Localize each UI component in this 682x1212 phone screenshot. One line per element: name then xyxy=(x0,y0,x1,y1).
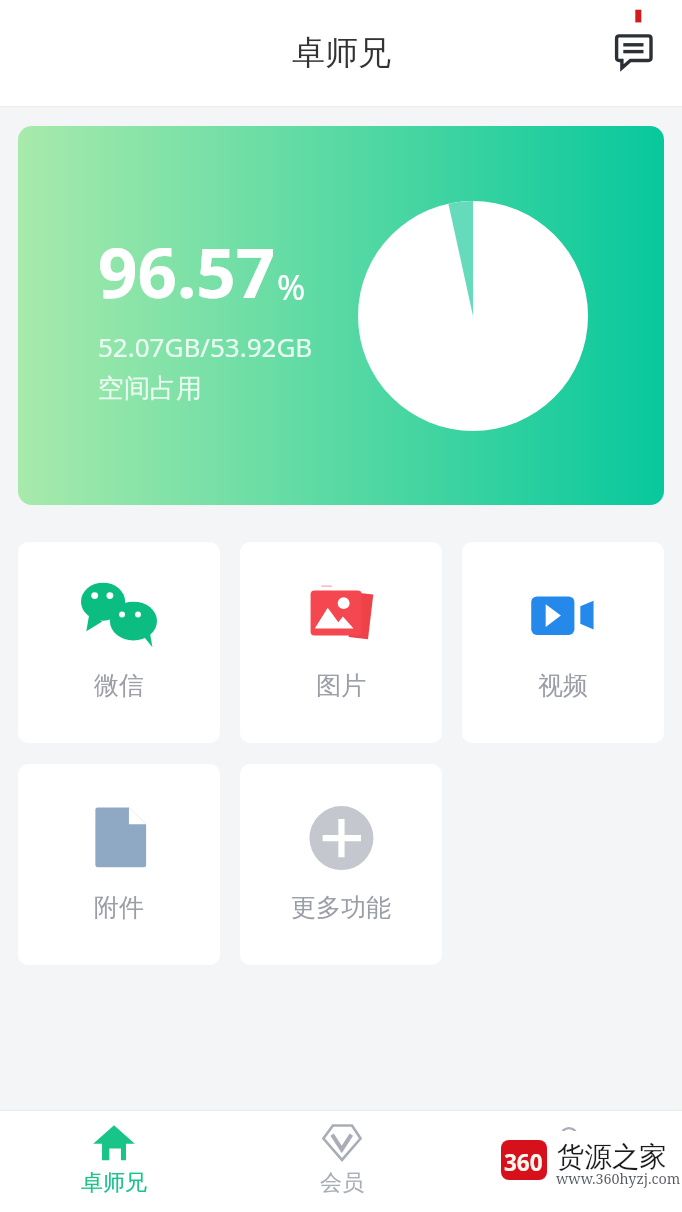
staticText: 空间占用 xyxy=(98,372,202,405)
staticText: 卓师兄 xyxy=(292,32,391,74)
button[interactable]: 96.57 xyxy=(18,126,664,505)
staticText: 图片 xyxy=(316,670,366,701)
button[interactable]: Messages xyxy=(606,0,662,80)
button[interactable]: 更多功能 xyxy=(240,764,442,965)
button[interactable]: 卓师兄 xyxy=(0,1110,228,1212)
staticText: 更多功能 xyxy=(291,892,391,923)
staticText: 96.57 xyxy=(98,224,276,318)
button[interactable]: 图片 xyxy=(240,542,442,743)
staticText: 货源之家 xyxy=(557,1140,667,1175)
staticText: 我的 xyxy=(547,1169,591,1197)
staticText: 附件 xyxy=(94,892,144,923)
staticText: 视频 xyxy=(538,670,588,701)
staticText: 卓师兄 xyxy=(81,1169,147,1197)
staticText: 360 xyxy=(504,1147,543,1178)
staticText: 52.07GB/53.92GB xyxy=(98,329,313,364)
staticText: % xyxy=(277,264,306,310)
staticText: 会员 xyxy=(320,1169,364,1197)
button[interactable]: 会员 xyxy=(228,1110,455,1212)
button[interactable]: 附件 xyxy=(18,764,220,965)
button[interactable]: 我的 xyxy=(455,1110,682,1212)
button[interactable]: 微信 xyxy=(18,542,220,743)
staticText: www.360hyzj.com xyxy=(556,1169,681,1188)
button[interactable]: 视频 xyxy=(462,542,664,743)
staticText: 微信 xyxy=(94,670,144,701)
